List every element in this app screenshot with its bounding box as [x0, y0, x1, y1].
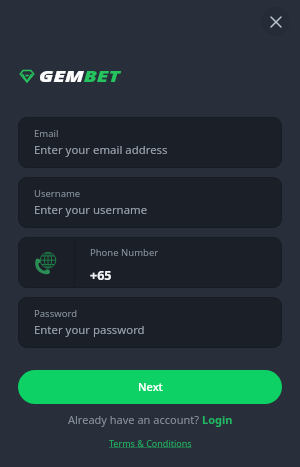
button[interactable]: Close — [261, 7, 290, 36]
staticText: Enter your password — [34, 322, 145, 338]
staticText: +65 — [90, 267, 112, 284]
staticText: Enter your email address — [34, 142, 168, 158]
staticText: Phone Number — [90, 246, 159, 259]
staticText: Already have an account? — [68, 412, 202, 427]
button[interactable]: Login — [202, 412, 233, 427]
button[interactable]: Phone Number — [18, 237, 282, 288]
staticText: Email — [34, 127, 59, 140]
staticText: Password — [34, 307, 77, 320]
button[interactable]: Terms & Conditions — [109, 437, 192, 449]
staticText: GEMBET — [39, 65, 120, 87]
button[interactable]: Username — [18, 177, 282, 228]
button[interactable]: Password — [18, 297, 282, 348]
button[interactable]: Next — [18, 370, 282, 404]
staticText: Username — [34, 187, 81, 200]
staticText: Next — [138, 379, 163, 394]
staticText: Enter your username — [34, 202, 148, 218]
button[interactable]: Email — [18, 117, 282, 168]
